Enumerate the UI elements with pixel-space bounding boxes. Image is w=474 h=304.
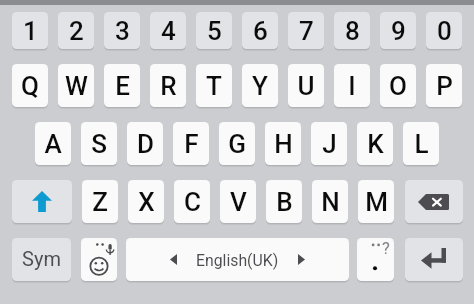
- button[interactable]: I: [334, 64, 370, 107]
- button[interactable]: V: [220, 180, 256, 223]
- button[interactable]: Y: [242, 64, 278, 107]
- button[interactable]: Backspace: [405, 180, 463, 223]
- staticText: 0: [437, 16, 452, 46]
- button[interactable]: 3: [104, 12, 140, 49]
- button[interactable]: S: [81, 122, 117, 165]
- button[interactable]: E: [104, 64, 140, 107]
- staticText: Z: [92, 187, 108, 217]
- button[interactable]: Q: [12, 64, 48, 107]
- button[interactable]: C: [174, 180, 210, 223]
- button[interactable]: 1: [12, 12, 48, 49]
- button[interactable]: 2: [58, 12, 94, 49]
- staticText: O: [389, 71, 407, 101]
- staticText: H: [274, 129, 293, 159]
- button[interactable]: Sym: [12, 238, 71, 281]
- button[interactable]: N: [312, 180, 348, 223]
- button[interactable]: 9: [380, 12, 416, 49]
- staticText: I: [348, 71, 356, 101]
- staticText: 3: [115, 16, 130, 46]
- button[interactable]: Shift: [12, 180, 72, 223]
- button[interactable]: P: [426, 64, 462, 107]
- staticText: N: [321, 187, 340, 217]
- button[interactable]: W: [58, 64, 94, 107]
- staticText: Y: [252, 71, 268, 101]
- staticText: English(UK): [196, 251, 279, 270]
- staticText: G: [228, 129, 246, 159]
- staticText: T: [206, 71, 222, 101]
- staticText: E: [115, 71, 130, 101]
- button[interactable]: B: [266, 180, 302, 223]
- staticText: F: [184, 129, 199, 159]
- button[interactable]: F: [173, 122, 209, 165]
- button[interactable]: 5: [196, 12, 232, 49]
- staticText: 2: [69, 16, 84, 46]
- staticText: M: [365, 187, 388, 217]
- button[interactable]: O: [380, 64, 416, 107]
- button[interactable]: 0: [426, 12, 462, 49]
- button[interactable]: 7: [288, 12, 324, 49]
- staticText: L: [414, 129, 429, 159]
- button[interactable]: G: [219, 122, 255, 165]
- staticText: ?: [382, 239, 390, 258]
- staticText: 4: [161, 16, 176, 46]
- staticText: 6: [253, 16, 268, 46]
- button[interactable]: L: [403, 122, 439, 165]
- staticText: B: [276, 187, 293, 217]
- staticText: 9: [391, 16, 406, 46]
- button[interactable]: T: [196, 64, 232, 107]
- button[interactable]: H: [265, 122, 301, 165]
- button[interactable]: 6: [242, 12, 278, 49]
- staticText: V: [230, 187, 247, 217]
- staticText: D: [137, 129, 154, 159]
- staticText: 7: [299, 16, 314, 46]
- button[interactable]: Enter: [405, 238, 463, 281]
- staticText: S: [91, 129, 107, 159]
- button[interactable]: A: [35, 122, 71, 165]
- button[interactable]: U: [288, 64, 324, 107]
- staticText: J: [322, 129, 337, 159]
- staticText: X: [138, 187, 155, 217]
- staticText: K: [367, 129, 384, 159]
- button[interactable]: 8: [334, 12, 370, 49]
- staticText: 1: [23, 16, 38, 46]
- staticText: Sym: [22, 247, 61, 270]
- button[interactable]: Z: [82, 180, 118, 223]
- staticText: C: [184, 187, 201, 217]
- button[interactable]: Space, English (UK): [126, 238, 349, 281]
- staticText: Q: [21, 71, 39, 101]
- button[interactable]: Emoji and voice input: [81, 238, 117, 281]
- staticText: 8: [345, 16, 360, 46]
- button[interactable]: D: [127, 122, 163, 165]
- button[interactable]: 4: [150, 12, 186, 49]
- staticText: R: [160, 71, 177, 101]
- button[interactable]: M: [358, 180, 394, 223]
- button[interactable]: J: [311, 122, 347, 165]
- button[interactable]: Punctuation: [357, 238, 394, 281]
- button[interactable]: K: [357, 122, 393, 165]
- staticText: W: [65, 71, 88, 101]
- staticText: P: [436, 71, 453, 101]
- button[interactable]: X: [128, 180, 164, 223]
- staticText: A: [44, 129, 62, 159]
- button[interactable]: R: [150, 64, 186, 107]
- staticText: U: [297, 71, 315, 101]
- staticText: 5: [207, 16, 222, 46]
